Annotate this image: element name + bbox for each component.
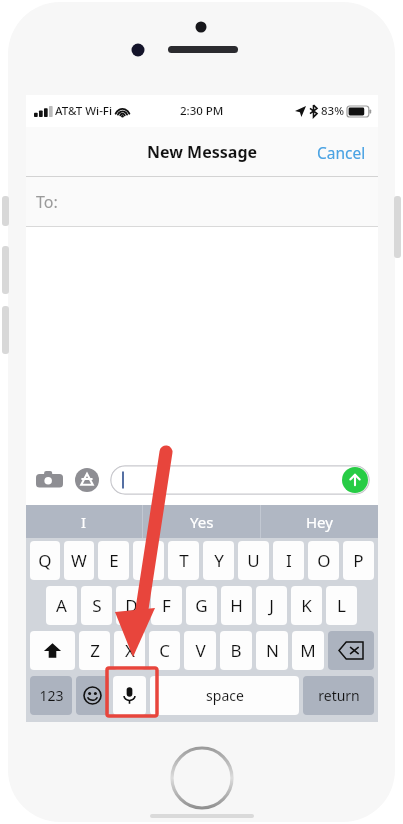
button[interactable]: B bbox=[220, 631, 252, 670]
button[interactable]: Backspace bbox=[328, 631, 374, 670]
button[interactable]: 123 bbox=[30, 676, 72, 715]
staticText: P bbox=[353, 549, 364, 572]
staticText: Y bbox=[214, 549, 224, 572]
staticText: S bbox=[92, 594, 102, 617]
button[interactable]: M bbox=[292, 631, 324, 670]
staticText: V bbox=[195, 639, 206, 662]
button[interactable]: Z bbox=[79, 631, 110, 670]
staticText: I bbox=[81, 512, 87, 532]
button[interactable]: N bbox=[256, 631, 288, 670]
staticText: return bbox=[318, 686, 360, 705]
button[interactable]: D bbox=[116, 586, 147, 625]
button[interactable]: R bbox=[133, 541, 164, 580]
button[interactable]: A bbox=[46, 586, 77, 625]
button[interactable]: I bbox=[273, 541, 304, 580]
button[interactable]: Q bbox=[30, 541, 60, 580]
staticText: L bbox=[337, 594, 346, 617]
button[interactable]: Yes bbox=[143, 505, 260, 538]
button[interactable]: F bbox=[151, 586, 182, 625]
button[interactable]: P bbox=[343, 541, 374, 580]
button[interactable]: V bbox=[184, 631, 216, 670]
button[interactable]: Emoji bbox=[76, 676, 109, 715]
staticText: B bbox=[230, 639, 242, 662]
button[interactable]: E bbox=[98, 541, 129, 580]
button[interactable]: return bbox=[303, 676, 374, 715]
button[interactable]: space bbox=[150, 676, 299, 715]
staticText: M bbox=[300, 639, 316, 662]
staticText: space bbox=[206, 686, 244, 705]
staticText: F bbox=[162, 594, 171, 617]
staticText: O bbox=[317, 549, 331, 572]
button[interactable]: Cancel bbox=[305, 134, 378, 171]
button[interactable]: K bbox=[291, 586, 322, 625]
button[interactable]: Hey bbox=[261, 505, 378, 538]
staticText: To: bbox=[36, 191, 58, 213]
button[interactable]: I bbox=[26, 505, 142, 538]
button[interactable]: To: bbox=[26, 177, 378, 227]
button[interactable]: W bbox=[64, 541, 94, 580]
staticText: D bbox=[125, 594, 138, 617]
button[interactable]: Camera bbox=[34, 465, 64, 495]
button[interactable]: G bbox=[186, 586, 217, 625]
staticText: N bbox=[266, 639, 279, 662]
button[interactable]: U bbox=[238, 541, 269, 580]
staticText: I bbox=[286, 549, 292, 572]
staticText: X bbox=[125, 639, 135, 662]
staticText: W bbox=[71, 549, 87, 572]
button[interactable]: S bbox=[81, 586, 112, 625]
staticText: R bbox=[143, 549, 154, 572]
button[interactable]: Send bbox=[110, 465, 370, 495]
button[interactable]: X bbox=[114, 631, 145, 670]
staticText: K bbox=[301, 594, 312, 617]
staticText: Yes bbox=[190, 512, 214, 532]
staticText: 123 bbox=[39, 686, 64, 705]
staticText: New Message bbox=[147, 141, 258, 163]
button[interactable]: C bbox=[149, 631, 180, 670]
staticText: Hey bbox=[306, 512, 333, 532]
button[interactable]: App Store bbox=[72, 465, 102, 495]
button[interactable]: Send bbox=[342, 467, 368, 493]
button[interactable]: Shift bbox=[30, 631, 75, 670]
staticText: Q bbox=[38, 549, 52, 572]
button[interactable]: O bbox=[308, 541, 339, 580]
button[interactable]: Y bbox=[203, 541, 234, 580]
button[interactable]: L bbox=[326, 586, 357, 625]
staticText: H bbox=[230, 594, 243, 617]
staticText: U bbox=[247, 549, 260, 572]
button[interactable]: Dictation bbox=[113, 676, 146, 715]
staticText: E bbox=[109, 549, 119, 572]
staticText: A bbox=[56, 594, 67, 617]
button[interactable]: H bbox=[221, 586, 252, 625]
staticText: AT&T Wi-Fi bbox=[55, 103, 112, 119]
button[interactable]: J bbox=[256, 586, 287, 625]
staticText: G bbox=[195, 594, 208, 617]
staticText: J bbox=[269, 594, 274, 617]
button[interactable]: T bbox=[168, 541, 199, 580]
staticText: Z bbox=[90, 639, 100, 662]
staticText: T bbox=[179, 549, 189, 572]
staticText: 2:30 PM bbox=[180, 103, 224, 119]
staticText: 83% bbox=[321, 103, 344, 119]
staticText: C bbox=[159, 639, 170, 662]
staticText: Cancel bbox=[317, 142, 366, 163]
